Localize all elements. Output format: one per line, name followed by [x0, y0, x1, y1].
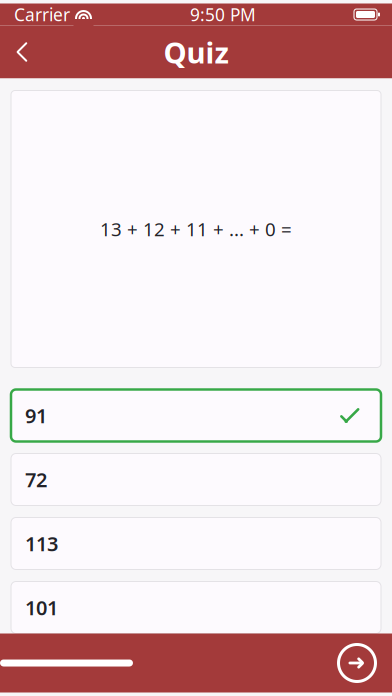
staticText: 9:50 PM: [190, 3, 256, 26]
button[interactable]: Back: [0, 29, 44, 75]
button[interactable]: 113: [11, 517, 381, 569]
staticText: 91: [25, 402, 47, 429]
button[interactable]: 72: [11, 453, 381, 505]
button[interactable]: 101: [11, 581, 381, 633]
button[interactable]: Next question: [332, 638, 382, 688]
staticText: Carrier: [14, 3, 70, 26]
button[interactable]: 91: [11, 389, 381, 441]
staticText: 113: [25, 530, 58, 557]
staticText: 13 + 12 + 11 + ... + 0 =: [100, 217, 292, 241]
staticText: 72: [25, 466, 47, 493]
staticText: 101: [25, 594, 58, 621]
staticText: Quiz: [163, 32, 228, 71]
